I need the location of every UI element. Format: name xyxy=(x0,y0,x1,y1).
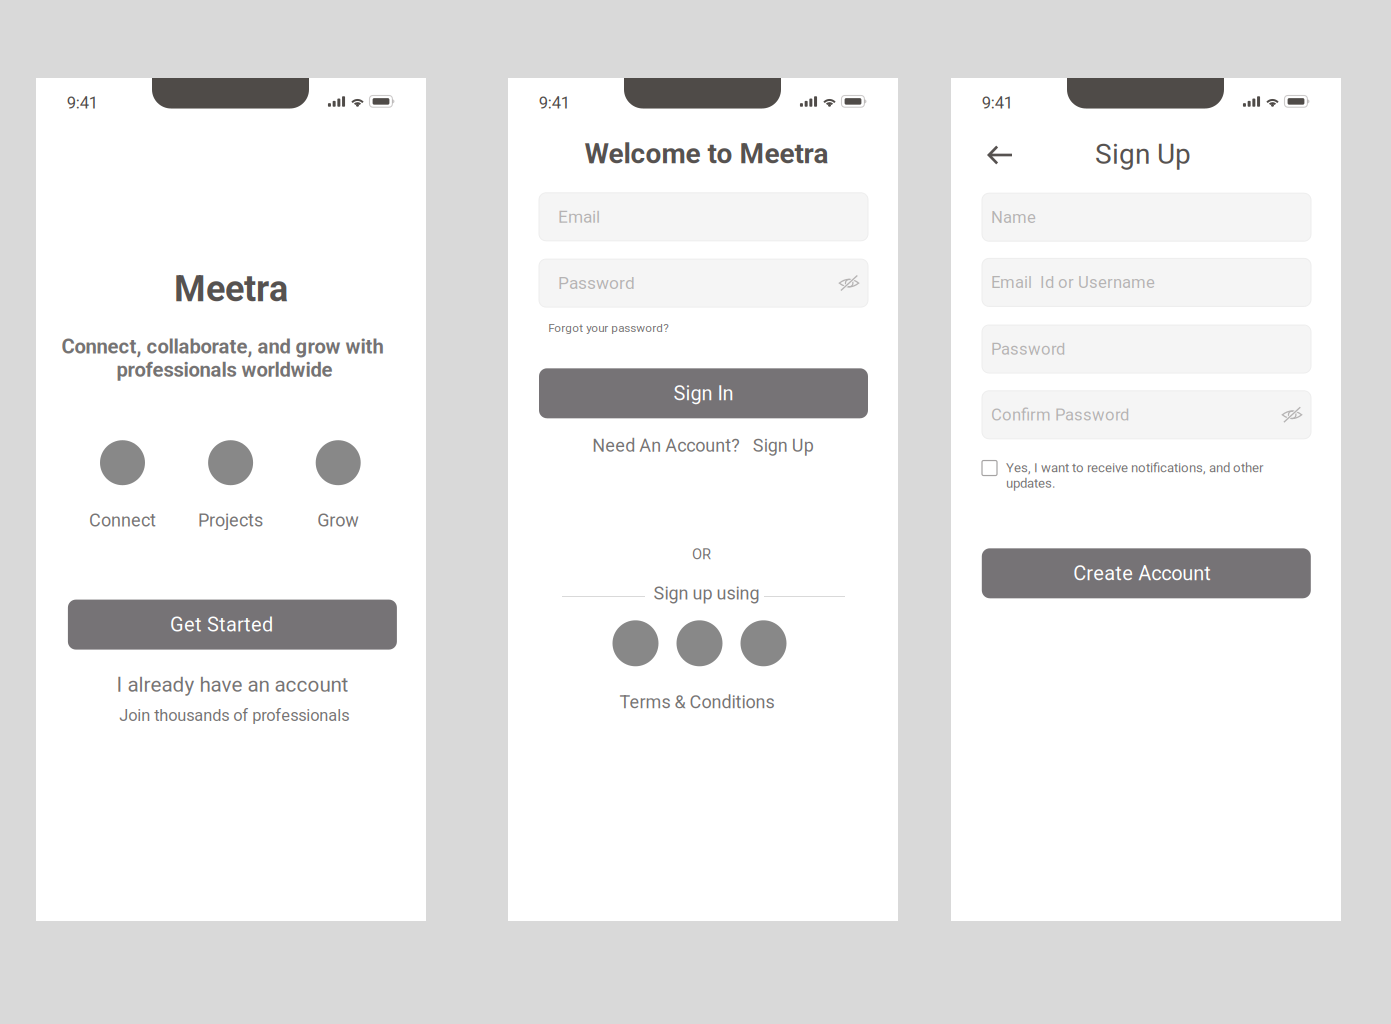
staticText: Sign up using xyxy=(654,583,760,604)
staticText: Email xyxy=(558,207,600,227)
staticText: OR xyxy=(692,546,711,563)
staticText: Connect xyxy=(89,510,156,531)
staticText: Welcome to Meetra xyxy=(585,137,829,170)
staticText: Create Account xyxy=(1073,562,1211,585)
button[interactable]: Get Started xyxy=(68,600,397,650)
button[interactable]: Sign In xyxy=(539,368,868,418)
staticText: 9:41 xyxy=(67,93,98,113)
staticText: Meetra xyxy=(174,268,288,310)
button[interactable]: Password xyxy=(982,325,1311,373)
staticText: Name xyxy=(991,207,1036,227)
staticText: 9:41 xyxy=(539,93,570,113)
staticText: 9:41 xyxy=(982,93,1013,113)
button[interactable]: Sign up with Apple xyxy=(740,620,786,666)
staticText: Email Id or Username xyxy=(991,273,1155,292)
button[interactable]: I already have an account xyxy=(117,673,349,697)
button[interactable]: Yes, I want to receive notifications, an… xyxy=(982,460,1311,491)
button[interactable]: Confirm Password xyxy=(982,391,1311,439)
staticText: Join thousands of professionals xyxy=(119,706,349,725)
button[interactable]: Email Id or Username xyxy=(982,258,1311,306)
staticText: Sign Up xyxy=(753,435,814,456)
button[interactable]: Password xyxy=(539,259,868,307)
staticText: Need An Account? xyxy=(592,435,740,456)
button[interactable]: Email xyxy=(539,193,868,241)
button[interactable]: Forgot your password? xyxy=(548,321,669,335)
staticText: I already have an account xyxy=(117,673,349,697)
staticText: Forgot your password? xyxy=(548,321,669,335)
button[interactable]: Sign Up xyxy=(753,435,814,456)
staticText: Terms & Conditions xyxy=(620,692,775,713)
button[interactable]: Name xyxy=(982,193,1311,241)
button[interactable]: Create Account xyxy=(982,548,1311,598)
staticText: Confirm Password xyxy=(991,405,1129,424)
staticText: Sign In xyxy=(673,382,733,405)
staticText: professionals worldwide xyxy=(117,358,333,382)
button[interactable]: Sign up with Facebook xyxy=(676,620,722,666)
staticText: Password xyxy=(558,273,635,293)
staticText: Sign Up xyxy=(1095,138,1191,171)
button[interactable]: Sign up with Google xyxy=(612,620,658,666)
staticText: Grow xyxy=(317,510,359,531)
button[interactable]: Back xyxy=(980,138,1019,171)
staticText: Connect, collaborate, and grow with xyxy=(61,335,383,358)
button[interactable]: Terms & Conditions xyxy=(620,692,775,713)
staticText: Yes, I want to receive notifications, an… xyxy=(1006,460,1263,491)
staticText: Projects xyxy=(198,510,263,531)
staticText: Get Started xyxy=(170,613,273,636)
staticText: Password xyxy=(991,339,1065,359)
